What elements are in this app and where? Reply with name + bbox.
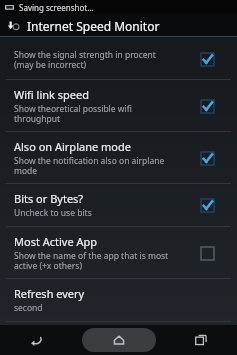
other: App icon xyxy=(4,17,22,35)
button[interactable]: Back xyxy=(0,325,73,355)
button[interactable]: Wifi link speed xyxy=(0,80,237,131)
button[interactable]: Checked xyxy=(194,192,220,218)
button[interactable]: Checked xyxy=(194,46,220,72)
staticText: Refresh every xyxy=(14,286,85,301)
staticText: Saving screenshot... xyxy=(19,2,94,13)
staticText: Most Active App xyxy=(14,234,98,249)
staticText: Show theoretical possible wifi throughpu… xyxy=(14,103,132,124)
staticText: Wifi link speed xyxy=(14,87,89,102)
staticText: Also on Airplane mode xyxy=(14,139,131,154)
staticText: second xyxy=(14,302,43,314)
button[interactable]: Home xyxy=(73,325,164,355)
staticText: Show the name of the app that is most ac… xyxy=(14,250,169,271)
button[interactable]: Refresh every xyxy=(0,279,237,321)
button[interactable]: Also on Airplane mode xyxy=(0,132,237,183)
button[interactable]: App icon xyxy=(0,14,166,37)
button[interactable]: Show the signal strength in procent (may… xyxy=(0,39,237,79)
staticText: Show the notification also on airplane m… xyxy=(14,155,165,176)
staticText: Internet Speed Monitor xyxy=(27,18,160,34)
button[interactable]: Bits or Bytes? xyxy=(0,184,237,226)
button[interactable]: Checked xyxy=(194,145,220,171)
staticText: Show the signal strength in procent (may… xyxy=(14,49,156,70)
staticText: Uncheck to use bits xyxy=(14,207,92,219)
button[interactable]: Most Active App xyxy=(0,227,237,278)
staticText: Bits or Bytes? xyxy=(14,191,84,206)
button[interactable]: Unchecked xyxy=(194,240,220,266)
button[interactable]: Recent apps xyxy=(164,325,237,355)
button[interactable]: Checked xyxy=(194,93,220,119)
